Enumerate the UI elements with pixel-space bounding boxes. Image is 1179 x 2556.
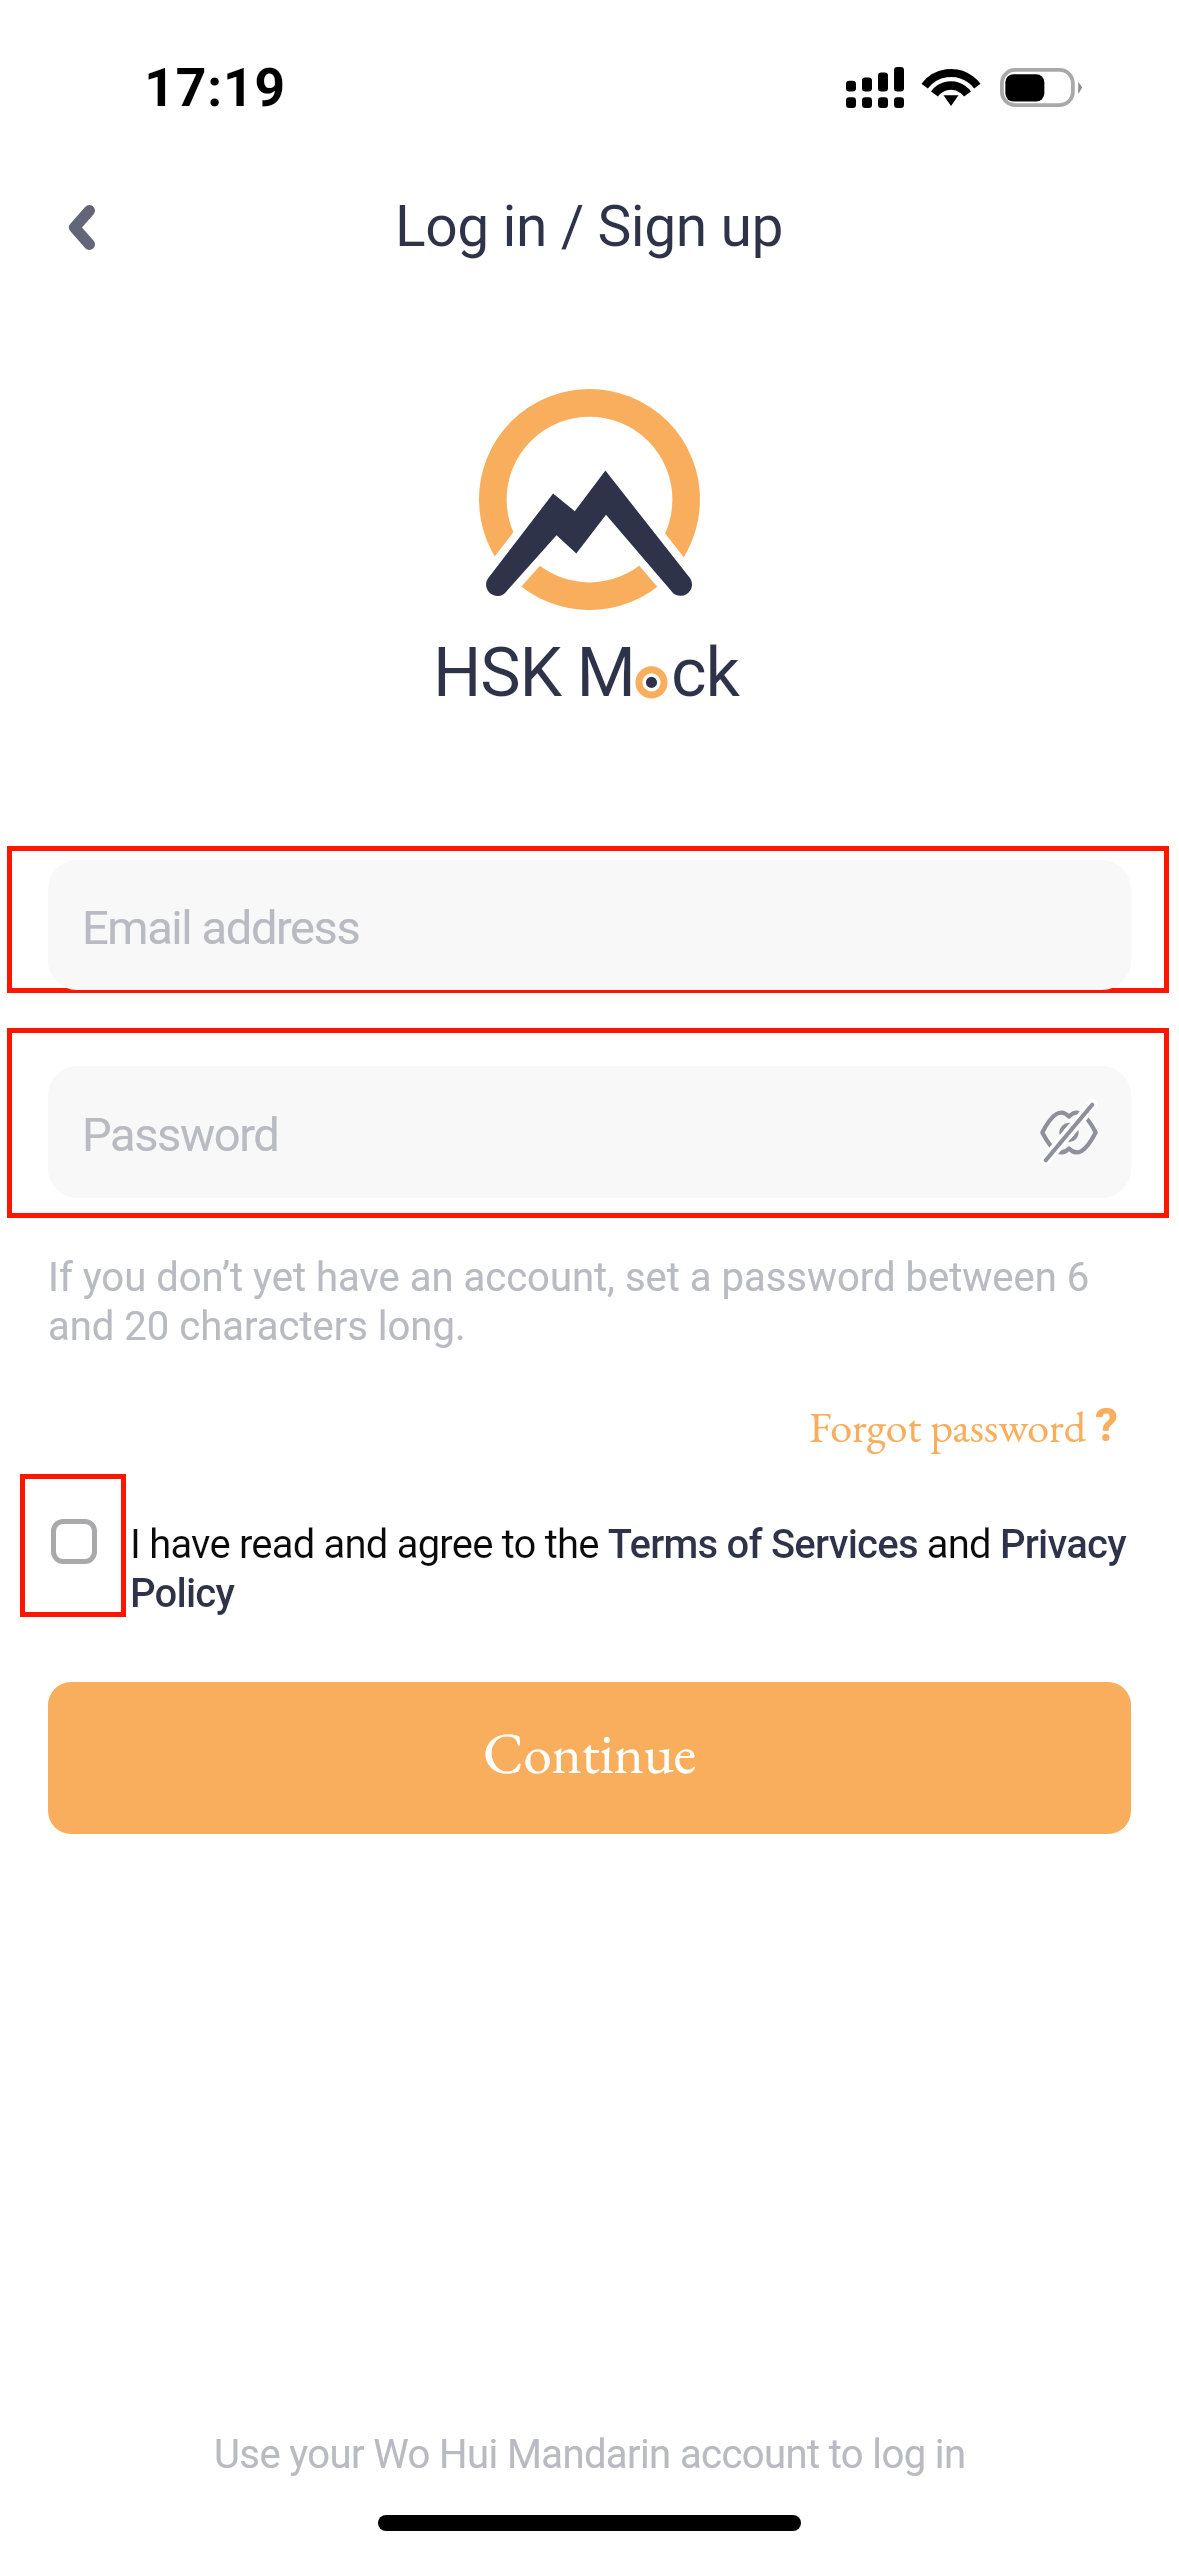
button[interactable]: Email address: [48, 860, 1131, 990]
staticText: ?: [1095, 1398, 1118, 1452]
staticText: I have read and agree to the Terms of Se…: [130, 1521, 1134, 1617]
staticText: If you don’t yet have an account, set a …: [48, 1254, 1110, 1350]
button[interactable]: Password: [48, 1066, 1131, 1198]
staticText: 17:19: [144, 56, 286, 119]
button[interactable]: I have read and agree to the Terms of Se…: [130, 1521, 1134, 1621]
staticText: ck: [671, 633, 739, 713]
staticText: Log in / Sign up: [395, 193, 784, 260]
button[interactable]: Back: [28, 173, 136, 281]
staticText: Continue: [483, 1716, 697, 1790]
staticText: Email address: [82, 900, 360, 955]
button[interactable]: Continue: [48, 1682, 1131, 1834]
staticText: Forgot password: [809, 1398, 1086, 1455]
staticText: HSK M: [433, 633, 635, 713]
staticText: Password: [82, 1107, 279, 1162]
button[interactable]: Forgot password: [760, 1386, 1118, 1460]
staticText: Use your Wo Hui Mandarin account to log …: [214, 2431, 966, 2478]
button[interactable]: Agree to terms and privacy policy: [20, 1474, 126, 1617]
button[interactable]: Show password: [1029, 1092, 1109, 1172]
